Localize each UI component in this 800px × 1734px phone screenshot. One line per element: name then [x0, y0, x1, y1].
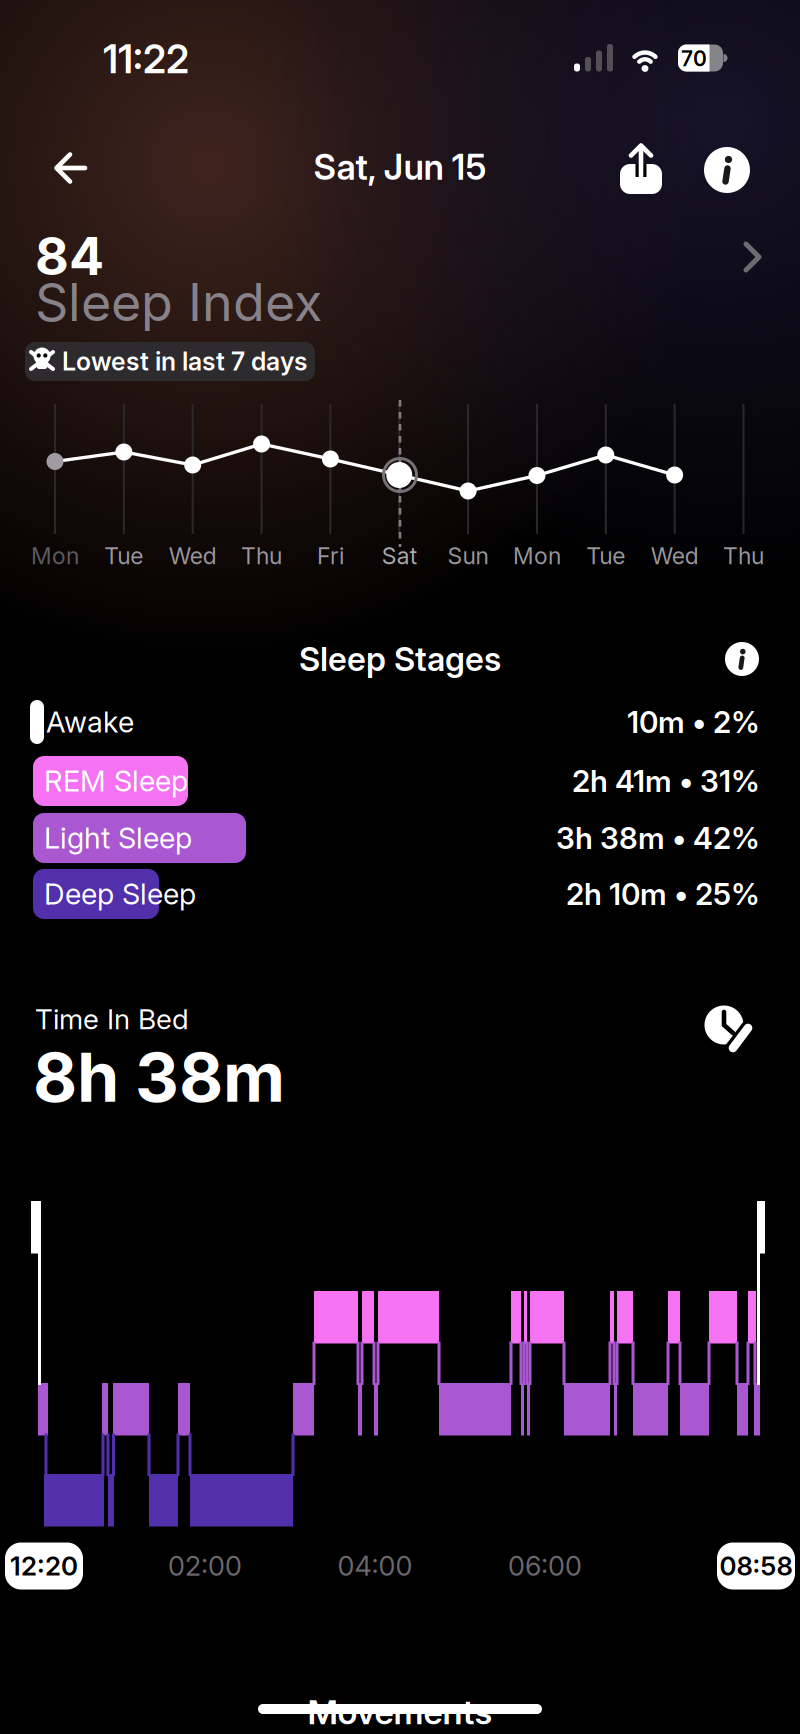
- staticText: Light Sleep: [44, 820, 192, 856]
- staticText: 04:00: [337, 1550, 412, 1582]
- staticText: Fri: [317, 542, 344, 570]
- button[interactable]: [704, 1004, 764, 1064]
- staticText: Tue: [104, 542, 143, 570]
- staticText: 2h 41m • 31%: [572, 763, 760, 799]
- staticText: 10m • 2%: [627, 704, 760, 740]
- staticText: 84: [35, 224, 104, 287]
- staticText: Sun: [448, 542, 489, 570]
- staticText: 70: [681, 46, 707, 71]
- staticText: Sleep Stages: [299, 639, 501, 679]
- staticText: Sat, Jun 15: [313, 146, 486, 188]
- staticText: Sleep Index: [35, 270, 322, 333]
- staticText: 3h 38m • 42%: [556, 820, 760, 856]
- staticText: Time In Bed: [35, 1002, 189, 1036]
- staticText: Mon: [513, 542, 561, 570]
- staticText: 2h 10m • 25%: [566, 876, 760, 912]
- staticText: 06:00: [508, 1550, 582, 1582]
- staticText: Wed: [169, 542, 217, 570]
- staticText: Awake: [46, 704, 134, 740]
- staticText: Mon: [31, 542, 79, 570]
- staticText: Lowest in last 7 days: [62, 346, 307, 377]
- staticText: 12:20: [10, 1550, 78, 1582]
- button[interactable]: [725, 642, 759, 676]
- button[interactable]: 08:58: [717, 1542, 795, 1589]
- staticText: 08:58: [719, 1550, 792, 1582]
- staticText: 02:00: [168, 1550, 242, 1582]
- staticText: Thu: [241, 542, 282, 570]
- staticText: Movements: [307, 1691, 492, 1732]
- staticText: 11:22: [103, 35, 189, 83]
- button[interactable]: [615, 141, 667, 197]
- staticText: REM Sleep: [44, 763, 188, 799]
- button[interactable]: [43, 144, 99, 192]
- staticText: Tue: [586, 542, 625, 570]
- staticText: Thu: [723, 542, 764, 570]
- staticText: Wed: [651, 542, 699, 570]
- button[interactable]: 84: [0, 212, 800, 334]
- button[interactable]: 12:20: [5, 1542, 83, 1589]
- button[interactable]: [704, 147, 750, 193]
- staticText: 8h 38m: [33, 1036, 285, 1118]
- staticText: Deep Sleep: [44, 876, 196, 912]
- staticText: Sat: [382, 542, 417, 570]
